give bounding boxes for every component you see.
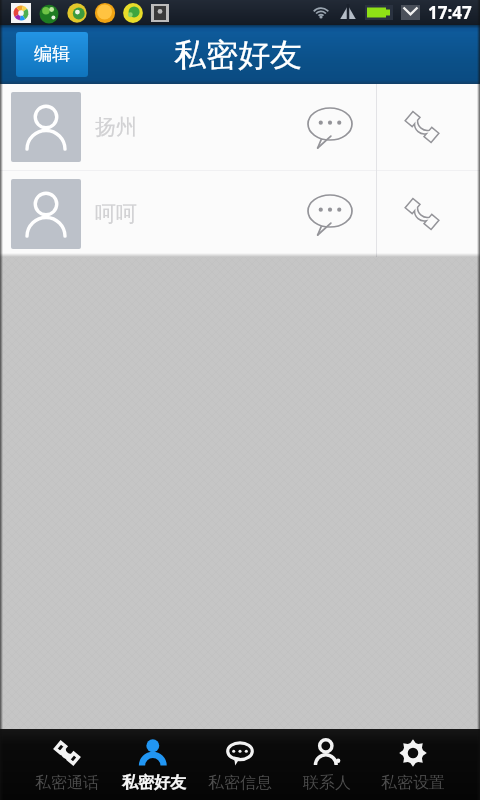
staticText: 呵呵 <box>95 201 137 227</box>
staticText: 编辑 <box>34 43 70 66</box>
button[interactable]: 私密信息 <box>197 729 283 800</box>
button[interactable]: 私密通话 <box>24 729 110 800</box>
button[interactable]: 私密好友 <box>111 729 197 800</box>
button[interactable]: 联系人 <box>284 729 370 800</box>
staticText: 私密信息 <box>208 773 272 793</box>
button[interactable]: 扬州 <box>0 84 480 170</box>
staticText: 私密好友 <box>174 35 302 75</box>
staticText: 17:47 <box>428 1 472 24</box>
staticText: 联系人 <box>303 773 351 793</box>
button[interactable]: Call <box>394 178 450 250</box>
staticText: 私密设置 <box>381 773 445 793</box>
button[interactable]: Call <box>394 91 450 163</box>
staticText: 私密通话 <box>35 773 99 793</box>
button[interactable]: Message <box>302 178 358 250</box>
button[interactable]: 呵呵 <box>0 171 480 257</box>
button[interactable]: 私密设置 <box>370 729 456 800</box>
button[interactable]: Message <box>302 91 358 163</box>
button[interactable]: 编辑 <box>16 32 88 77</box>
staticText: 扬州 <box>95 114 137 140</box>
staticText: 私密好友 <box>122 773 186 793</box>
